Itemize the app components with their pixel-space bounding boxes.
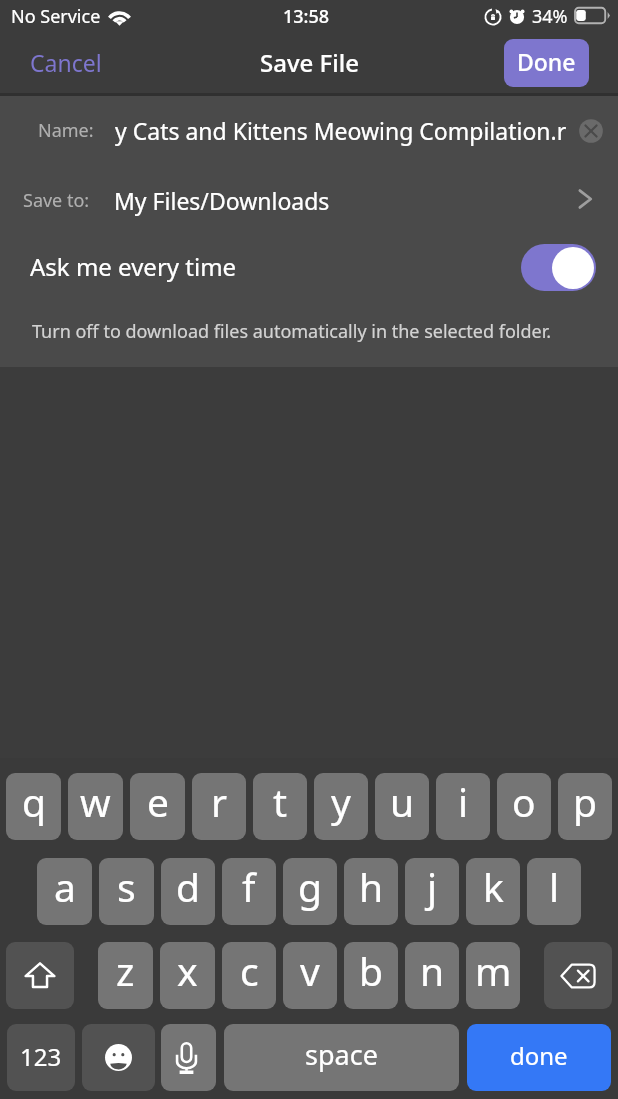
staticText: My Files/Downloads <box>114 185 330 216</box>
staticText: r <box>211 775 228 828</box>
staticText: j <box>427 860 438 913</box>
staticText: t <box>273 775 288 828</box>
staticText: Cancel <box>30 47 102 78</box>
staticText: u <box>390 775 415 828</box>
staticText: Save to: <box>23 188 90 213</box>
button[interactable]: 123 <box>7 1024 75 1091</box>
button[interactable]: Done <box>504 39 589 87</box>
button[interactable]: c <box>222 942 276 1009</box>
button[interactable]: y <box>314 773 368 840</box>
button[interactable]: Dictation <box>161 1024 216 1091</box>
button[interactable]: q <box>6 773 61 840</box>
staticText: y <box>331 775 351 828</box>
button[interactable]: r <box>192 773 246 840</box>
staticText: q <box>22 775 46 828</box>
staticText: y Cats and Kittens Meowing Compilation.r <box>115 115 567 146</box>
staticText: Ask me every time <box>30 250 237 283</box>
staticText: 123 <box>20 1040 62 1073</box>
button[interactable]: z <box>98 942 153 1009</box>
button[interactable]: w <box>68 773 123 840</box>
staticText: w <box>80 775 111 828</box>
button[interactable]: Clear file name <box>576 116 606 146</box>
staticText: done <box>510 1039 568 1072</box>
button[interactable]: k <box>466 858 520 925</box>
staticText: s <box>117 860 136 913</box>
staticText: v <box>300 944 320 997</box>
button[interactable]: d <box>161 858 215 925</box>
button[interactable]: j <box>405 858 459 925</box>
staticText: o <box>512 775 536 828</box>
button[interactable]: p <box>558 773 612 840</box>
button[interactable]: a <box>37 858 92 925</box>
staticText: z <box>116 944 135 997</box>
button[interactable]: h <box>344 858 398 925</box>
other: Choose folder <box>574 187 596 211</box>
staticText: k <box>483 860 504 913</box>
staticText: Turn off to download files automatically… <box>32 319 552 344</box>
button[interactable]: s <box>99 858 154 925</box>
button[interactable]: v <box>283 942 337 1009</box>
button[interactable]: Save to: <box>0 166 618 232</box>
staticText: 13:58 <box>283 4 330 29</box>
button[interactable]: b <box>344 942 398 1009</box>
staticText: x <box>177 944 198 997</box>
staticText: space <box>305 1036 378 1073</box>
button[interactable]: Emoji keyboard <box>82 1024 155 1091</box>
staticText: f <box>242 860 256 913</box>
button[interactable]: f <box>222 858 276 925</box>
staticText: Name: <box>38 118 94 143</box>
button[interactable]: l <box>527 858 581 925</box>
button[interactable]: done <box>467 1024 611 1091</box>
staticText: i <box>458 775 469 828</box>
staticText: p <box>573 775 597 828</box>
button[interactable]: e <box>130 773 185 840</box>
staticText: e <box>147 775 169 828</box>
button[interactable]: Cancel <box>18 38 114 87</box>
staticText: d <box>176 860 200 913</box>
staticText: Save File <box>260 46 359 79</box>
button[interactable]: Backspace <box>544 942 612 1009</box>
button[interactable]: n <box>405 942 459 1009</box>
button[interactable]: g <box>283 858 337 925</box>
staticText: 34% <box>532 4 568 29</box>
button[interactable]: Ask me every time <box>521 244 596 291</box>
staticText: c <box>240 944 259 997</box>
button[interactable]: space <box>224 1024 459 1091</box>
staticText: g <box>298 860 322 913</box>
staticText: No Service <box>11 4 101 29</box>
button[interactable]: m <box>466 942 520 1009</box>
button[interactable]: o <box>497 773 551 840</box>
staticText: h <box>359 860 384 913</box>
button[interactable]: x <box>160 942 215 1009</box>
button[interactable]: Shift <box>6 942 74 1009</box>
staticText: b <box>359 944 383 997</box>
button[interactable]: u <box>375 773 429 840</box>
staticText: m <box>475 944 512 997</box>
staticText: n <box>420 944 445 997</box>
button[interactable]: Ask me every time <box>0 232 618 302</box>
button[interactable]: i <box>436 773 490 840</box>
staticText: Done <box>517 46 576 77</box>
staticText: a <box>54 860 76 913</box>
button[interactable]: t <box>253 773 307 840</box>
staticText: l <box>549 860 560 913</box>
